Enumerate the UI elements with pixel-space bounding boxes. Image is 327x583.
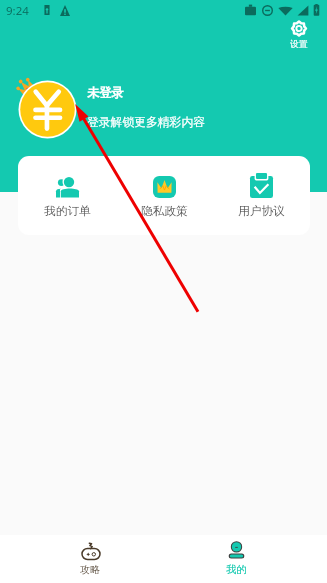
button[interactable]: 我的订单 bbox=[30, 168, 105, 223]
staticText: 我的 bbox=[226, 563, 247, 576]
staticText: 隐私政策 bbox=[141, 204, 188, 219]
button[interactable]: 头像 bbox=[17, 79, 78, 140]
staticText: 用户协议 bbox=[238, 204, 285, 219]
button[interactable]: 我的 bbox=[163, 535, 310, 583]
button[interactable]: 攻略 bbox=[17, 535, 163, 583]
button[interactable]: 隐私政策 bbox=[127, 168, 202, 223]
staticText: 设置 bbox=[290, 39, 308, 50]
button[interactable]: 设置 bbox=[285, 18, 313, 52]
staticText: 我的订单 bbox=[44, 204, 91, 219]
button[interactable]: 用户协议 bbox=[224, 168, 299, 223]
staticText: 未登录 bbox=[87, 85, 124, 100]
button[interactable]: 未登录 bbox=[87, 85, 205, 130]
staticText: 攻略 bbox=[80, 563, 101, 576]
staticText: 登录解锁更多精彩内容 bbox=[87, 115, 205, 130]
staticText: 9:24 bbox=[6, 3, 29, 19]
